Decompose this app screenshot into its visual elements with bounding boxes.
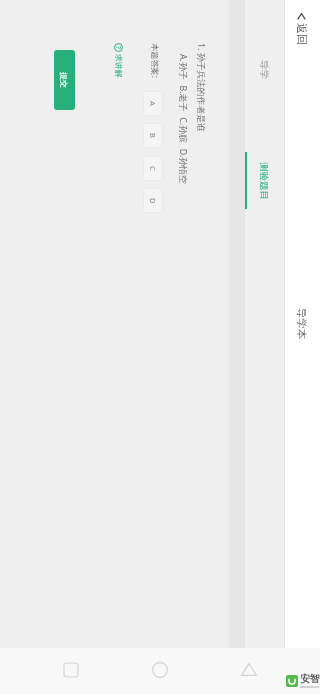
button[interactable]: B [143, 123, 163, 148]
staticText: A.孙子 B.老子 C.孙膑 D.孙悟空 [177, 54, 189, 184]
button[interactable]: C [143, 156, 163, 181]
staticText: C [148, 166, 158, 171]
button[interactable]: Home [152, 662, 168, 678]
button[interactable]: 返回 [289, 9, 315, 49]
staticText: 导学 [258, 60, 270, 79]
staticText: 安智 [300, 672, 320, 685]
button[interactable]: ? [114, 43, 124, 78]
staticText: ? [114, 46, 123, 50]
staticText: 返回 [295, 23, 309, 45]
staticText: A [148, 101, 158, 106]
button[interactable]: 提交 [54, 50, 75, 110]
staticText: D [148, 198, 158, 204]
button[interactable]: Recent apps [64, 663, 78, 677]
staticText: 测验题目 [258, 162, 270, 200]
button[interactable]: 测验题目 [245, 125, 284, 236]
staticText: 求讲解 [114, 54, 124, 78]
button[interactable]: Back [241, 663, 257, 676]
button[interactable]: 导学 [245, 14, 284, 125]
staticText: 导学本 [295, 308, 308, 340]
button[interactable]: D [143, 188, 163, 213]
staticText: www.anzhi.com [300, 685, 320, 689]
staticText: B [148, 133, 158, 138]
button[interactable]: A [143, 91, 163, 116]
staticText: 本题答案: [150, 43, 161, 78]
staticText: 1. 孙子兵法的作者是谁 [195, 43, 207, 132]
staticText: 提交 [59, 72, 69, 88]
